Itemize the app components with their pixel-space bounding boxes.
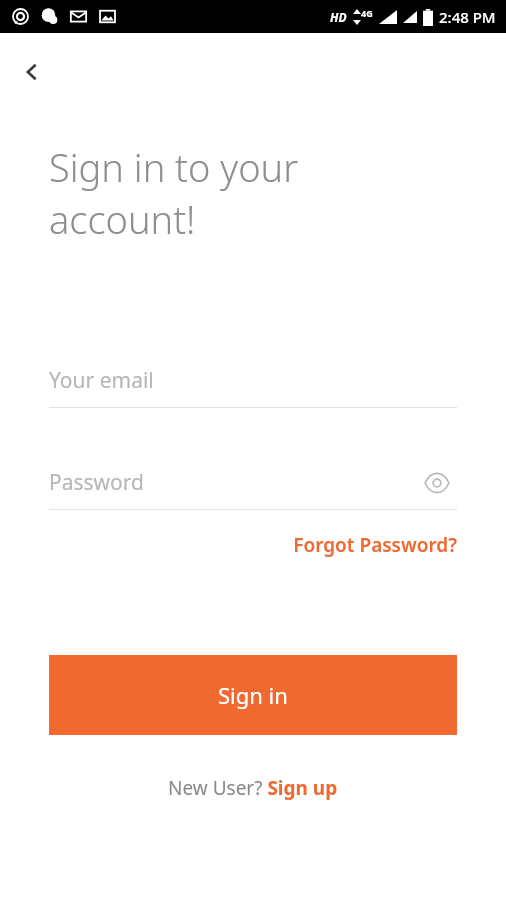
staticText: Sign in to your [49,141,299,193]
button[interactable]: Password [49,455,457,510]
staticText: HD [330,9,347,25]
staticText: Sign in [218,680,288,710]
staticText: 4G [361,7,373,19]
staticText: Forgot Password? [293,532,457,558]
button[interactable]: Show password [417,463,457,503]
staticText: 2:48 PM [439,7,496,27]
staticText: Your email [49,366,154,395]
staticText: account! [49,193,196,245]
button[interactable]: New User? Sign up [160,771,346,805]
staticText: New User? Sign up [168,775,338,801]
button[interactable]: Your email [49,352,457,408]
staticText: Password [49,468,144,497]
button[interactable]: Forgot Password? [225,525,457,565]
button[interactable]: Back [4,44,60,100]
button[interactable]: Sign in [49,655,457,735]
